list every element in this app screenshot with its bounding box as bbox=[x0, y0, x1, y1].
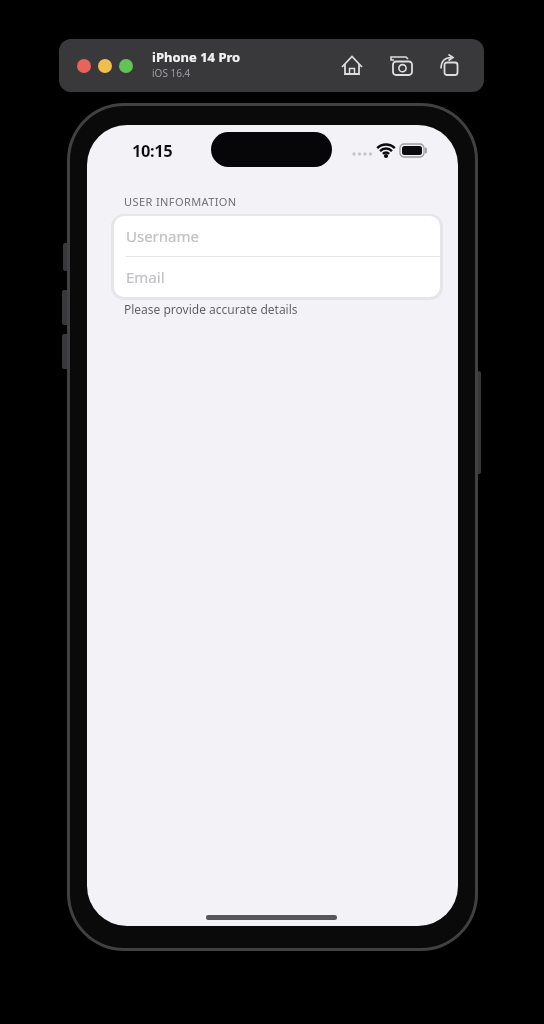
staticText: Please provide accurate details bbox=[124, 301, 298, 317]
button[interactable] bbox=[388, 51, 416, 79]
staticText: iPhone 14 Pro bbox=[152, 48, 241, 66]
button[interactable] bbox=[338, 51, 366, 79]
staticText: 10:15 bbox=[132, 139, 173, 161]
staticText: iOS 16.4 bbox=[152, 66, 191, 80]
staticText: USER INFORMATION bbox=[124, 194, 237, 209]
button[interactable] bbox=[437, 51, 465, 79]
button[interactable]: Email bbox=[114, 257, 440, 297]
button[interactable]: Username bbox=[114, 216, 440, 256]
staticText: Email bbox=[126, 267, 165, 287]
staticText: Username bbox=[126, 226, 199, 246]
